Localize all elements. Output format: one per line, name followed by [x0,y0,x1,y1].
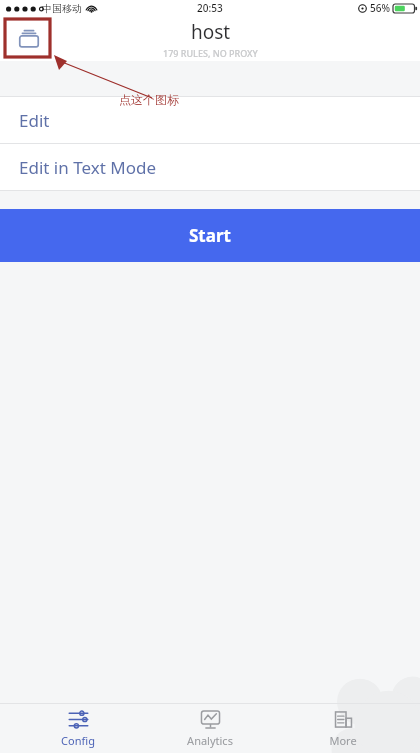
staticText: 179 RULES, NO PROXY [163,47,258,59]
staticText: More [329,733,357,748]
staticText: 中国移动 [42,2,82,15]
staticText: Analytics [187,733,233,748]
staticText: Edit in Text Mode [19,156,156,179]
button[interactable]: Config [23,703,133,753]
staticText: Edit [19,109,50,132]
button[interactable]: Analytics [155,703,265,753]
button[interactable]: Edit [0,97,420,143]
staticText: 20:53 [197,1,223,15]
staticText: Config [61,733,95,748]
staticText: 56% [370,1,390,15]
staticText: host [191,19,231,45]
button[interactable]: Edit in Text Mode [0,144,420,190]
staticText: 点这个图标 [119,92,179,107]
button[interactable]: More [288,703,398,753]
button[interactable]: Start [0,209,420,262]
staticText: Start [189,224,231,247]
button[interactable]: Configs [11,21,46,56]
